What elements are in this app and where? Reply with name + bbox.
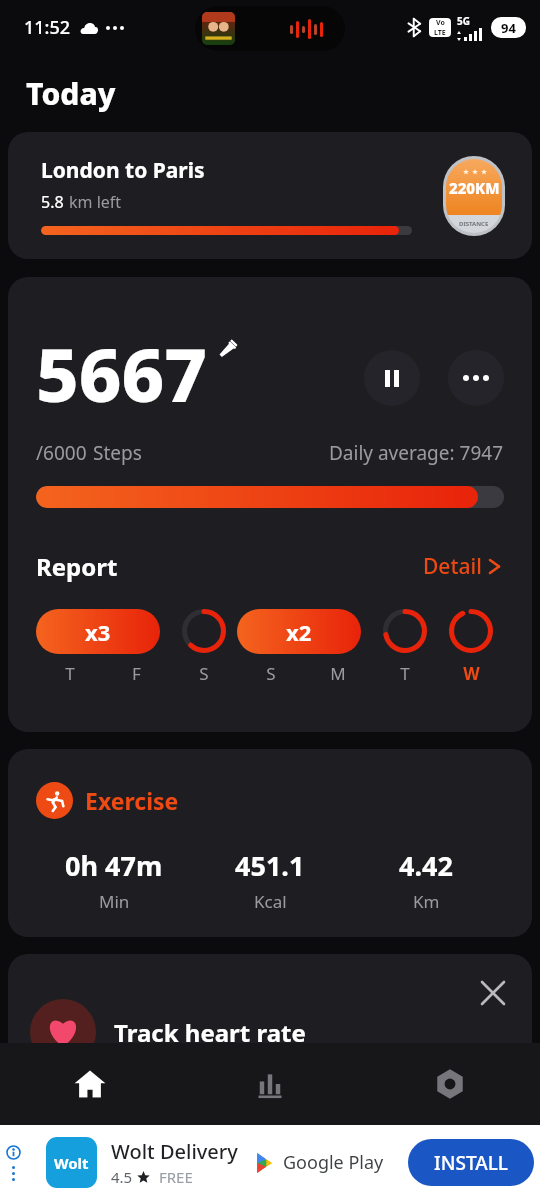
staticText: 0h 47m xyxy=(65,847,163,884)
staticText: x3 xyxy=(85,617,111,647)
staticText: 451.1 xyxy=(235,847,305,884)
button[interactable]: x3 xyxy=(36,609,160,654)
button[interactable]: Dismiss xyxy=(476,976,510,1010)
staticText: Daily average: 7947 xyxy=(329,440,504,466)
button[interactable]: Exercise xyxy=(8,749,532,937)
staticText: DISTANCE xyxy=(459,220,489,228)
staticText: 220KM xyxy=(449,178,500,198)
staticText: LTE xyxy=(434,28,446,37)
staticText: Wolt Delivery xyxy=(111,1138,238,1165)
staticText: /6000 xyxy=(36,440,87,466)
staticText: 5.8 xyxy=(41,191,64,213)
staticText: km left xyxy=(69,191,122,213)
staticText: 5667 xyxy=(36,323,208,424)
staticText: Track heart rate xyxy=(114,1016,306,1049)
button[interactable]: Settings xyxy=(360,1043,540,1125)
staticText: FREE xyxy=(159,1167,193,1187)
button[interactable]: Now playing xyxy=(195,6,345,51)
staticText: W xyxy=(463,662,480,685)
staticText: Kcal xyxy=(254,890,287,913)
button[interactable]: Edit step goal xyxy=(214,335,240,361)
button[interactable]: Detail xyxy=(419,548,504,585)
staticText: T xyxy=(65,662,75,685)
button[interactable]: x2 xyxy=(237,609,361,654)
staticText: Vo xyxy=(436,18,445,28)
staticText: Km xyxy=(413,890,440,913)
staticText: 11:52 xyxy=(24,15,71,40)
staticText: 4.5 xyxy=(111,1167,133,1187)
button[interactable]: London to Paris xyxy=(8,132,532,259)
staticText: M xyxy=(330,662,346,685)
staticText: Detail xyxy=(423,552,482,581)
staticText: S xyxy=(266,662,276,685)
button[interactable]: Pause xyxy=(364,350,420,406)
staticText: Exercise xyxy=(85,785,179,816)
button[interactable]: Track heart rate xyxy=(8,954,532,1074)
staticText: INSTALL xyxy=(434,1150,509,1176)
staticText: Report xyxy=(36,550,118,583)
staticText: 4.42 xyxy=(399,847,453,884)
button[interactable]: INSTALL xyxy=(408,1139,534,1186)
staticText: Steps xyxy=(93,440,142,466)
staticText: 5G xyxy=(457,14,470,28)
staticText: 94 xyxy=(501,19,516,37)
button[interactable]: More options xyxy=(448,350,504,406)
button[interactable]: Statistics xyxy=(180,1043,360,1125)
staticText: London to Paris xyxy=(41,156,205,185)
staticText: Wolt xyxy=(54,1153,89,1173)
staticText: x2 xyxy=(286,617,312,647)
staticText: Min xyxy=(99,890,130,913)
staticText: Today xyxy=(26,73,116,114)
staticText: T xyxy=(400,662,410,685)
button[interactable]: Home xyxy=(0,1043,180,1125)
staticText: S xyxy=(199,662,209,685)
staticText: F xyxy=(132,662,141,685)
staticText: Google Play xyxy=(283,1150,384,1175)
